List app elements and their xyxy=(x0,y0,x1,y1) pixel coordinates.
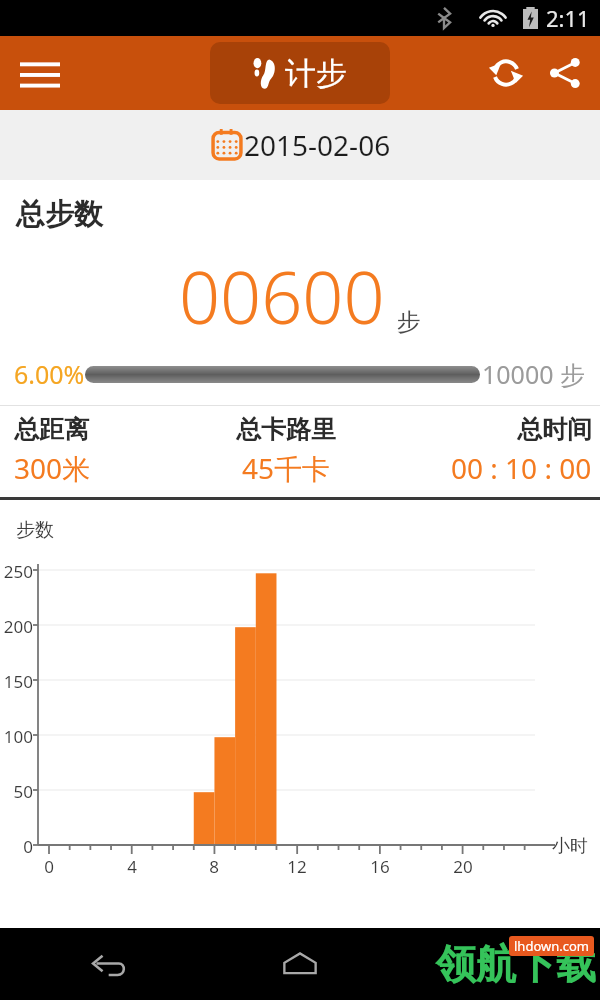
staticText: 4 xyxy=(112,855,152,878)
button[interactable]: Menu xyxy=(8,41,72,105)
staticText: 8 xyxy=(194,855,234,878)
staticText: 45千卡 xyxy=(242,449,331,487)
staticText: 计步 xyxy=(285,54,347,93)
button[interactable]: Home xyxy=(272,936,328,992)
staticText: 小时 xyxy=(552,835,588,858)
staticText: 2:11 xyxy=(546,3,590,33)
staticText: 16 xyxy=(360,855,400,878)
staticText: 6.00% xyxy=(14,357,85,391)
button[interactable]: 总时间 xyxy=(381,414,592,487)
staticText: 00 : 10 : 00 xyxy=(451,449,592,487)
staticText: 50 xyxy=(0,780,33,803)
button[interactable]: Back xyxy=(80,936,136,992)
button[interactable]: 总距离 xyxy=(14,414,191,487)
button[interactable]: 2015-02-06 xyxy=(0,110,600,180)
staticText: 100 xyxy=(0,725,33,748)
staticText: 2015-02-06 xyxy=(244,126,391,164)
staticText: 12 xyxy=(277,855,317,878)
staticText: 200 xyxy=(0,615,33,638)
staticText: 250 xyxy=(0,560,33,583)
staticText: 150 xyxy=(0,670,33,693)
staticText: 领航下载 xyxy=(436,939,596,989)
button[interactable]: 总卡路里 xyxy=(191,414,381,487)
staticText: 总步数 xyxy=(16,196,103,233)
button[interactable]: 计步 xyxy=(210,42,390,104)
staticText: lhdown.com xyxy=(514,937,589,955)
staticText: 步数 xyxy=(16,518,54,542)
button[interactable]: Refresh xyxy=(476,43,536,103)
staticText: 总时间 xyxy=(517,414,592,445)
staticText: 10000 步 xyxy=(482,357,586,391)
staticText: 步 xyxy=(397,307,421,337)
staticText: 00600 xyxy=(179,247,385,345)
staticText: 20 xyxy=(443,855,483,878)
button[interactable]: Share xyxy=(536,44,594,102)
staticText: 总卡路里 xyxy=(236,414,336,445)
staticText: 0 xyxy=(29,855,69,878)
staticText: 300米 xyxy=(14,449,91,487)
staticText: 总距离 xyxy=(14,414,89,445)
staticText: 0 xyxy=(0,835,33,858)
